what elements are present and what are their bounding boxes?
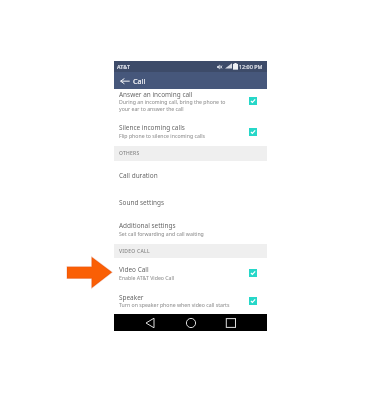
staticText: Call duration [119, 171, 158, 180]
staticText: OTHERS [119, 150, 140, 157]
staticText: Turn on speaker phone when video call st… [119, 301, 230, 308]
button[interactable]: Speaker [114, 293, 267, 308]
button[interactable]: Additional settings [114, 221, 267, 237]
staticText: Enable AT&T Video Call [119, 274, 175, 281]
staticText: Set call forwarding and call waiting [119, 230, 204, 237]
staticText: Video Call [119, 265, 149, 274]
button[interactable]: Toggle [249, 97, 257, 105]
button[interactable]: Navigate up [118, 74, 131, 87]
button[interactable]: Toggle [249, 297, 257, 305]
staticText: Additional settings [119, 221, 176, 230]
staticText: 12:00 PM [239, 63, 263, 70]
button[interactable]: Answer an incoming call [114, 90, 267, 112]
button[interactable]: Call duration [114, 169, 267, 181]
button[interactable]: Video Call [114, 265, 267, 282]
staticText: VIDEO CALL [119, 248, 150, 255]
staticText: Silence incoming calls [119, 123, 185, 132]
button[interactable]: Toggle [249, 128, 257, 136]
staticText: Call [133, 76, 146, 86]
staticText: Speaker [119, 293, 144, 302]
staticText: Sound settings [119, 198, 165, 207]
staticText: During an incoming call, bring the phone… [119, 98, 226, 105]
staticText: Answer an incoming call [119, 90, 193, 99]
button[interactable]: Home [184, 316, 198, 330]
staticText: Flip phone to silence incoming calls [119, 132, 206, 139]
button[interactable]: Back [143, 316, 157, 330]
staticText: your ear to answer the call [119, 105, 184, 112]
button[interactable]: Sound settings [114, 196, 267, 208]
staticText: AT&T [117, 63, 131, 70]
button[interactable]: Recent apps [224, 316, 238, 330]
button[interactable]: Toggle [249, 269, 257, 277]
button[interactable]: Silence incoming calls [114, 123, 267, 140]
